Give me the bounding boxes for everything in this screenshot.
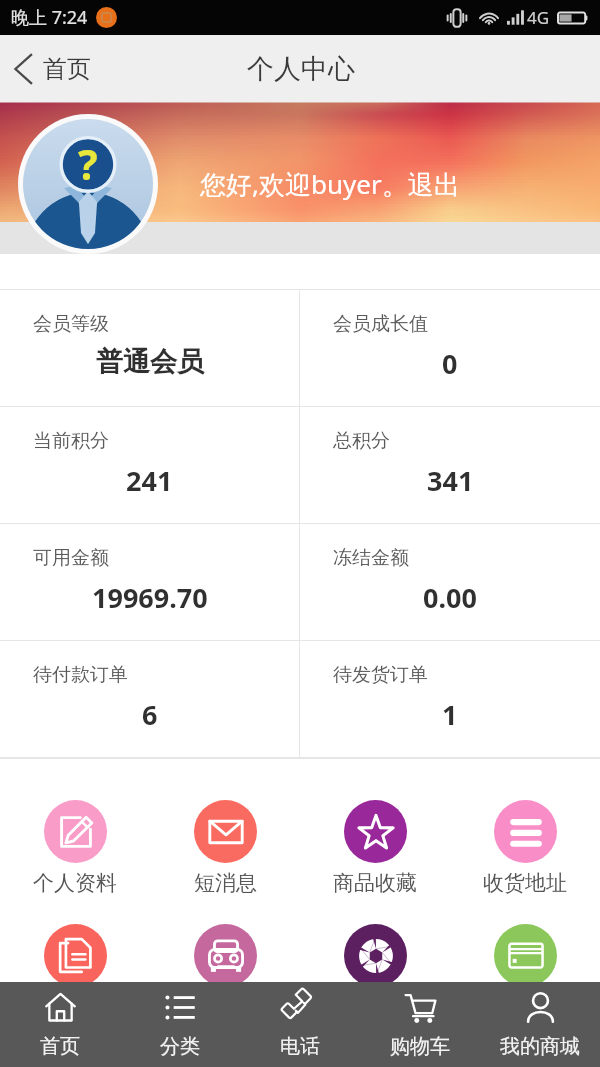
staticText: 4G — [527, 6, 550, 29]
button[interactable]: 短消息 — [150, 800, 300, 896]
button[interactable]: 购物车 — [360, 982, 480, 1067]
staticText: 首页 — [40, 1034, 80, 1059]
staticText: 19969.70 — [92, 579, 208, 616]
button[interactable]: 待发货订单 — [300, 641, 600, 757]
button[interactable]: 总积分 — [300, 407, 600, 523]
staticText: 普通会员 — [96, 345, 204, 379]
button[interactable]: 会员成长值 — [300, 290, 600, 406]
staticText: 晚上 7:24 — [11, 5, 88, 30]
staticText: 1 — [442, 696, 458, 733]
button[interactable]: 我的商城 — [480, 982, 600, 1067]
staticText: 个人资料 — [33, 870, 117, 896]
staticText: 个人中心 — [247, 52, 355, 86]
staticText: 6 — [142, 696, 158, 733]
button[interactable]: User avatar — [18, 114, 158, 254]
button[interactable]: 电话 — [240, 982, 360, 1067]
button[interactable]: 冻结金额 — [300, 524, 600, 640]
button[interactable]: 可用金额 — [0, 524, 299, 640]
button[interactable]: 相册 — [300, 924, 450, 1020]
button[interactable]: 物流 — [150, 924, 300, 1020]
button[interactable]: 首页 — [0, 982, 120, 1067]
button[interactable]: 分类 — [120, 982, 240, 1067]
staticText: 分类 — [160, 1034, 200, 1059]
staticText: 会员等级 — [33, 312, 109, 336]
staticText: 待发货订单 — [333, 663, 428, 687]
button[interactable]: VIP — [450, 924, 600, 1023]
staticText: 0 — [442, 345, 458, 382]
button[interactable]: 待付款订单 — [0, 641, 299, 757]
button[interactable]: 订单 — [0, 924, 150, 1020]
staticText: 我的商城 — [500, 1034, 580, 1059]
staticText: VIP — [509, 994, 542, 1023]
button[interactable]: 收货地址 — [450, 800, 600, 896]
staticText: 冻结金额 — [333, 546, 409, 570]
button[interactable]: 会员等级 — [0, 290, 299, 406]
button[interactable]: 个人资料 — [0, 800, 150, 896]
staticText: 电话 — [280, 1034, 320, 1059]
staticText: 可用金额 — [33, 546, 109, 570]
staticText: 首页 — [43, 54, 91, 84]
button[interactable]: 当前积分 — [0, 407, 299, 523]
staticText: 总积分 — [333, 429, 390, 453]
staticText: 当前积分 — [33, 429, 109, 453]
staticText: 订单 — [54, 994, 96, 1020]
button[interactable]: 商品收藏 — [300, 800, 450, 896]
button[interactable]: 首页 — [0, 44, 107, 94]
staticText: 待付款订单 — [33, 663, 128, 687]
staticText: 会员成长值 — [333, 312, 428, 336]
staticText: 您好,欢迎buyer。退出 — [200, 166, 460, 202]
staticText: 商品收藏 — [333, 870, 417, 896]
staticText: 短消息 — [194, 870, 257, 896]
staticText: 购物车 — [390, 1034, 450, 1059]
staticText: 341 — [427, 462, 474, 499]
staticText: 收货地址 — [483, 870, 567, 896]
staticText: 241 — [126, 462, 173, 499]
staticText: ? — [78, 136, 98, 192]
staticText: 0.00 — [423, 579, 477, 616]
